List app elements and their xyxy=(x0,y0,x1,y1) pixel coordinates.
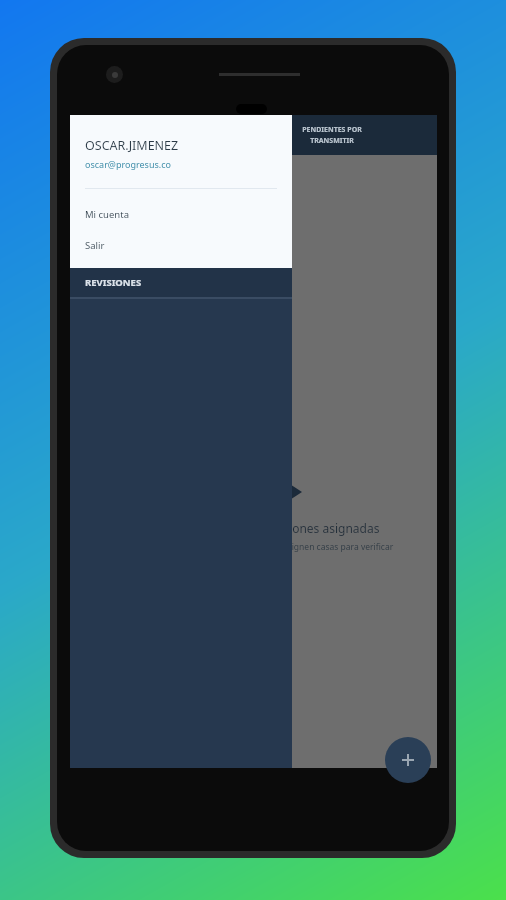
staticText: oscar@progresus.co xyxy=(85,158,171,170)
staticText: Mi cuenta xyxy=(85,208,129,221)
staticText: Salir xyxy=(85,239,105,252)
staticText: REVISIONES xyxy=(85,276,142,289)
staticText: No hay revisiones asignadas xyxy=(220,520,380,536)
button[interactable]: Agregar xyxy=(385,737,431,783)
button[interactable]: Salir xyxy=(70,236,292,254)
staticText: Espere a que le asignen casas para verif… xyxy=(220,541,394,553)
staticText: PENDIENTES POR TRANSMITIR xyxy=(302,125,362,145)
staticText: OSCAR.JIMENEZ xyxy=(85,137,179,154)
button[interactable]: Mi cuenta xyxy=(70,205,292,223)
